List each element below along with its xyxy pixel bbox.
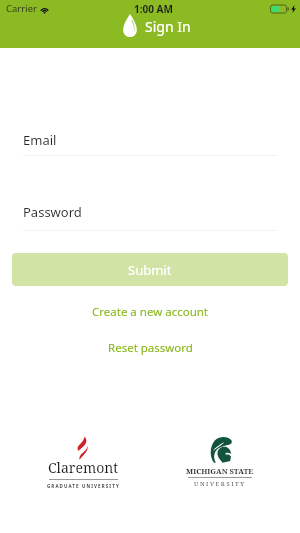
staticText: MICHIGAN STATE <box>186 466 254 476</box>
staticText: Sign In <box>145 17 191 36</box>
staticText: UNIVERSITY <box>194 480 246 488</box>
staticText: Submit <box>128 261 172 279</box>
staticText: Create a new account <box>92 304 208 320</box>
button[interactable]: Submit <box>12 253 288 286</box>
button[interactable]: Email <box>23 131 277 156</box>
staticText: GRADUATE UNIVERSITY <box>47 483 120 489</box>
staticText: Carrier <box>6 2 37 15</box>
staticText: Claremont <box>48 458 119 477</box>
staticText: Email <box>23 131 57 149</box>
button[interactable]: Create a new account <box>0 299 300 325</box>
staticText: 1:00 AM <box>134 2 173 16</box>
staticText: Reset password <box>108 340 193 356</box>
staticText: Password <box>23 203 82 221</box>
button[interactable]: Reset password <box>0 335 300 361</box>
button[interactable]: Password <box>23 203 277 231</box>
